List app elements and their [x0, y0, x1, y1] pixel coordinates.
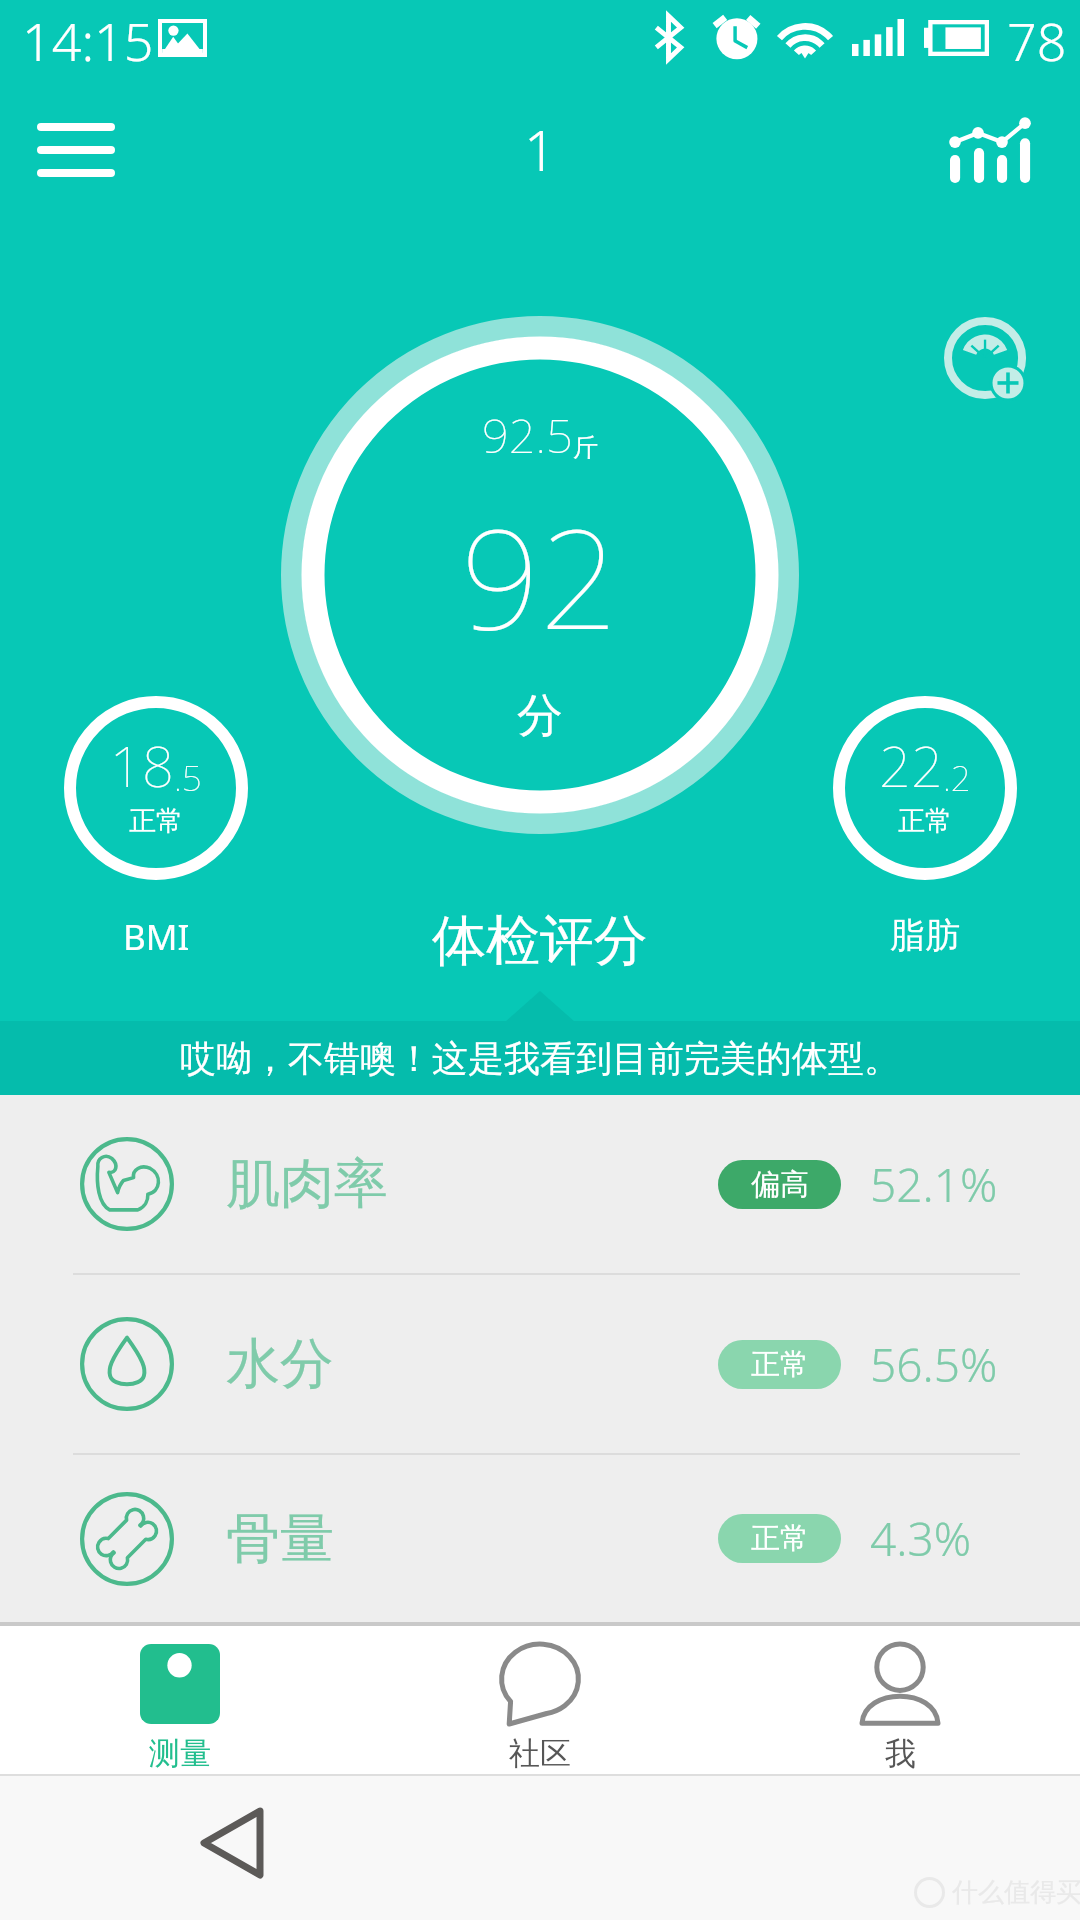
staticText: 斤 [573, 432, 598, 463]
button[interactable]: Back [182, 1793, 282, 1893]
staticText: 正常 [751, 1346, 809, 1383]
button[interactable]: 骨量 [0, 1455, 1080, 1622]
staticText: 肌肉率 [226, 1150, 388, 1218]
staticText: 78 [1007, 5, 1067, 76]
staticText: 脂肪 [890, 913, 960, 957]
staticText: 骨量 [226, 1505, 334, 1573]
staticText: 水分 [226, 1330, 334, 1398]
staticText: BMI [123, 913, 190, 961]
staticText: 18 [110, 727, 174, 803]
staticText: 正常 [751, 1520, 809, 1557]
staticText: 测量 [149, 1734, 211, 1773]
staticText: 4.3% [870, 1507, 972, 1570]
staticText: 分 [517, 687, 563, 745]
staticText: 哎呦，不错噢！这是我看到目前完美的体型。 [180, 1036, 900, 1081]
button[interactable]: Add measurement [934, 307, 1034, 407]
button[interactable]: 肌肉率 [0, 1095, 1080, 1273]
button[interactable]: 社区 [360, 1627, 720, 1781]
staticText: 什么值得买 [952, 1876, 1080, 1909]
staticText: .5 [174, 754, 202, 802]
button[interactable]: 我 [720, 1627, 1080, 1781]
staticText: 56.5% [870, 1333, 998, 1396]
button[interactable]: 水分 [0, 1275, 1080, 1453]
staticText: 92.5 [482, 403, 573, 467]
staticText: 1 [524, 111, 556, 187]
staticText: 92 [461, 481, 619, 669]
staticText: 52.1% [870, 1153, 998, 1216]
button[interactable]: 测量 [0, 1627, 360, 1781]
staticText: 正常 [898, 804, 952, 838]
button[interactable]: Statistics [933, 88, 1047, 206]
staticText: 偏高 [751, 1166, 809, 1203]
button[interactable]: Menu [0, 88, 152, 206]
staticText: .2 [943, 754, 971, 802]
staticText: 正常 [129, 804, 183, 838]
staticText: 14:15 [22, 5, 154, 76]
staticText: 体检评分 [432, 907, 648, 975]
staticText: 社区 [509, 1734, 571, 1773]
staticText: 我 [885, 1734, 916, 1773]
staticText: 22 [879, 727, 943, 803]
